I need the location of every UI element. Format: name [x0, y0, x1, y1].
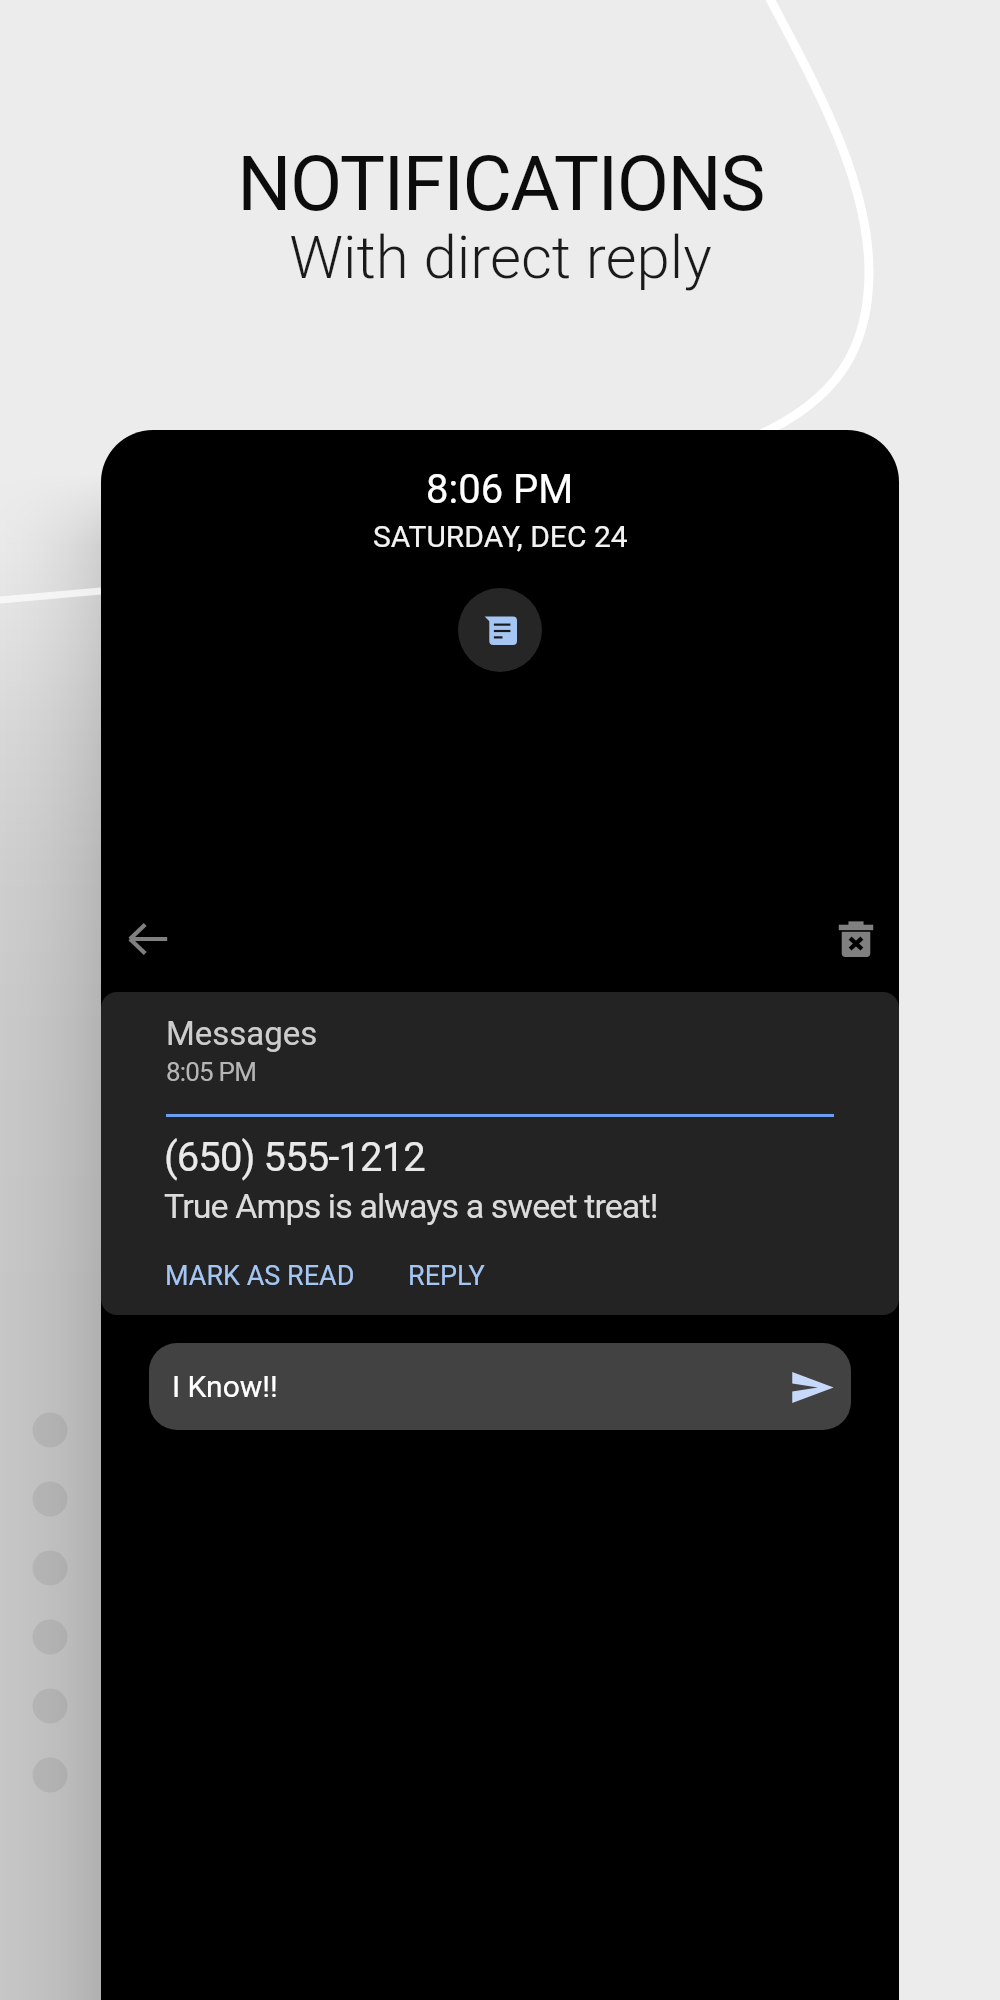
staticText: True Amps is always a sweet treat! [164, 1186, 658, 1226]
button[interactable]: I Know!! [149, 1343, 851, 1430]
button[interactable]: Messages [101, 992, 899, 1315]
button[interactable]: Messages notification [458, 588, 542, 672]
staticText: Messages [166, 1014, 318, 1053]
staticText: I Know!! [172, 1369, 278, 1404]
staticText: REPLY [408, 1260, 485, 1292]
staticText: (650) 555-1212 [164, 1134, 425, 1181]
staticText: NOTIFICATIONS [237, 139, 764, 228]
button[interactable]: Clear all notifications [817, 900, 895, 978]
staticText: With direct reply [289, 222, 712, 292]
button[interactable]: MARK AS READ [165, 1260, 355, 1292]
staticText: 8:06 PM [426, 466, 574, 513]
staticText: 8:05 PM [166, 1057, 257, 1087]
staticText: MARK AS READ [165, 1260, 355, 1292]
staticText: SATURDAY, DEC 24 [373, 519, 628, 554]
button[interactable]: Back [109, 900, 187, 978]
button[interactable]: REPLY [408, 1260, 485, 1292]
button[interactable]: Send [782, 1357, 842, 1417]
